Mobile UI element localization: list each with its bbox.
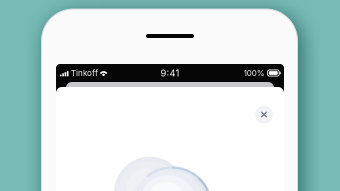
staticText: 9:41 xyxy=(160,67,179,79)
staticText: Tinkoff xyxy=(69,68,100,78)
staticText: 100% xyxy=(244,68,267,78)
button[interactable]: Close xyxy=(255,105,273,123)
